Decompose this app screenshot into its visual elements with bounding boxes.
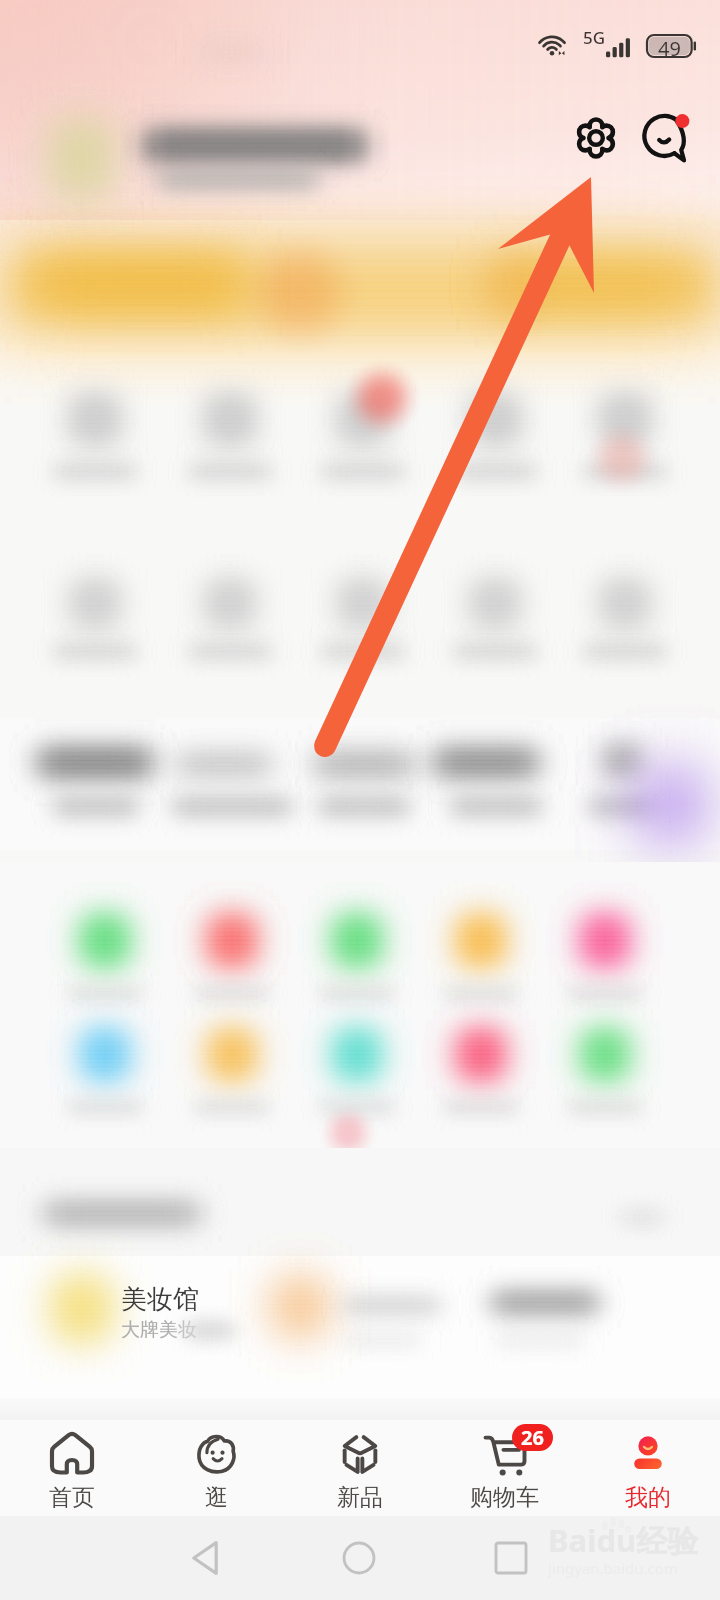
staticText: 26 <box>521 1424 544 1451</box>
staticText: 我的 <box>625 1483 671 1512</box>
button[interactable]: 新品 <box>288 1420 432 1516</box>
staticText: 49 <box>658 35 681 57</box>
button[interactable]: Messages <box>633 104 701 172</box>
staticText: 新品 <box>337 1483 383 1512</box>
staticText: 大牌美妆 <box>121 1318 197 1342</box>
button[interactable]: Recent apps <box>463 1528 559 1588</box>
staticText: 5G <box>583 26 606 49</box>
button[interactable]: Home <box>311 1528 407 1588</box>
staticText: 购物车 <box>470 1483 539 1512</box>
staticText: 逛 <box>205 1483 228 1512</box>
button[interactable]: 逛 <box>144 1420 288 1516</box>
button[interactable]: 我的 <box>576 1420 720 1516</box>
button[interactable]: 26 <box>432 1420 576 1516</box>
staticText: 首页 <box>49 1483 95 1512</box>
button[interactable]: 首页 <box>0 1420 144 1516</box>
button[interactable]: Settings <box>562 104 630 172</box>
staticText: 美妆馆 <box>121 1283 199 1316</box>
button[interactable]: Back <box>157 1528 253 1588</box>
staticText: Baidu经验 <box>548 1519 699 1561</box>
